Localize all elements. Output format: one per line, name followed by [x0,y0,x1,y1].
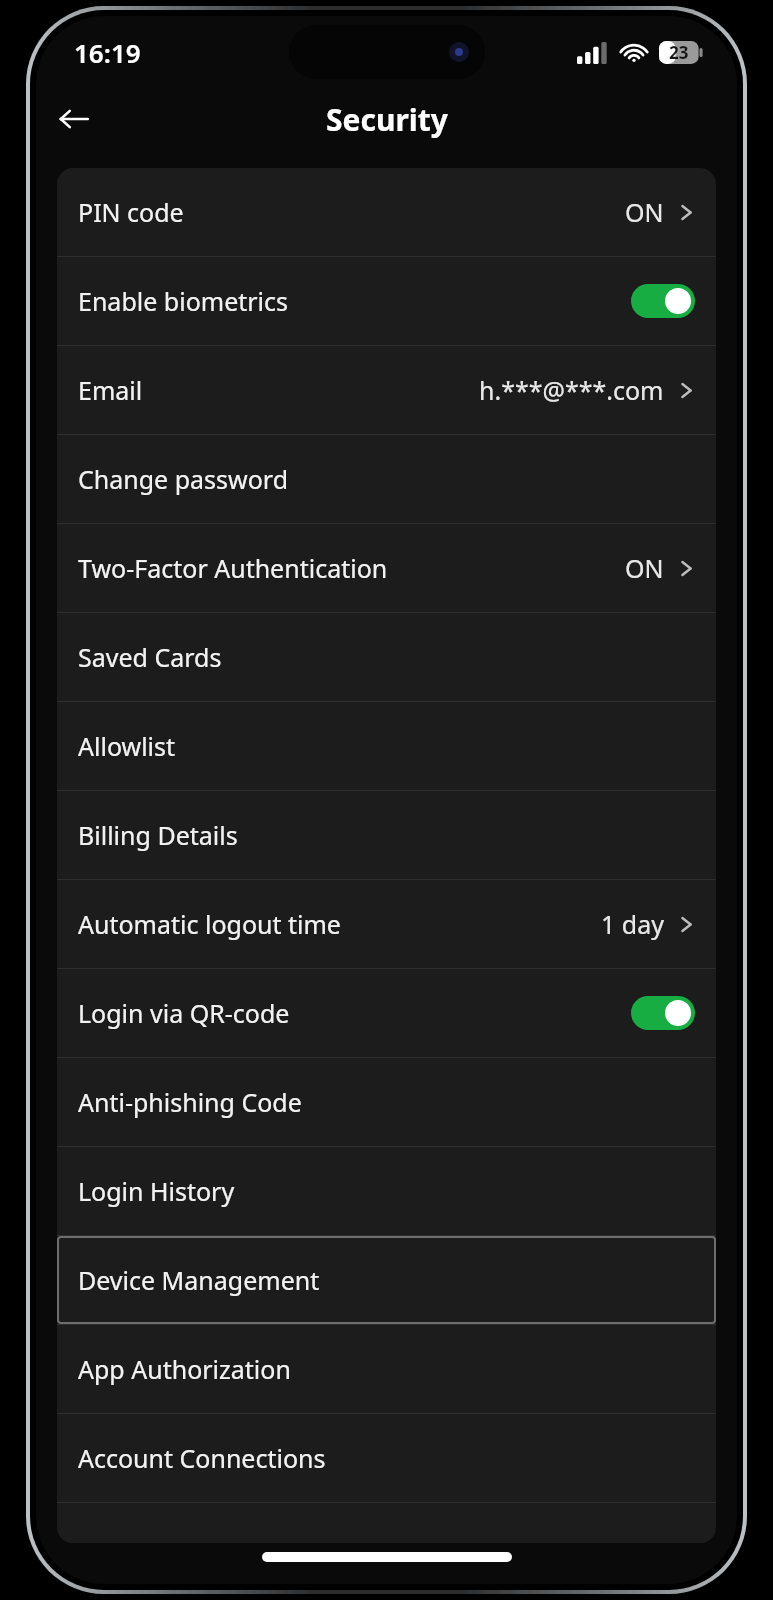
staticText: Email [78,373,143,407]
staticText: Automatic logout time [78,907,341,941]
button[interactable]: Enable biometrics [57,257,716,345]
button[interactable]: Login History [57,1147,716,1235]
staticText: Enable biometrics [78,284,289,318]
button[interactable]: Back [48,93,100,145]
staticText: 1 day [601,907,664,941]
staticText: Login History [78,1174,235,1208]
button[interactable]: Toggle Login via QR-code [631,996,695,1030]
staticText: 16:19 [74,35,141,70]
button[interactable]: App Authorization [57,1325,716,1413]
staticText: 23 [669,41,689,64]
staticText: Anti-phishing Code [78,1085,302,1119]
button[interactable]: Billing Details [57,791,716,879]
button[interactable]: Anti-phishing Code [57,1058,716,1146]
staticText: Saved Cards [78,640,222,674]
button[interactable]: Automatic logout time [57,880,716,968]
button[interactable]: PIN code [57,168,716,256]
button[interactable]: Allowlist [57,702,716,790]
button[interactable]: Email [57,346,716,434]
button[interactable]: Device Management [57,1236,716,1324]
button[interactable]: Toggle Enable biometrics [631,284,695,318]
button[interactable]: Change password [57,435,716,523]
staticText: App Authorization [78,1352,291,1386]
button[interactable]: Saved Cards [57,613,716,701]
staticText: ON [625,551,664,585]
staticText: Security [326,99,448,140]
button[interactable]: Account Connections [57,1414,716,1502]
staticText: Device Management [78,1263,320,1297]
staticText: Login via QR-code [78,996,290,1030]
button[interactable]: Two-Factor Authentication [57,524,716,612]
button[interactable]: Login via QR-code [57,969,716,1057]
staticText: Two-Factor Authentication [78,551,388,585]
staticText: h.***@***.com [479,373,664,407]
staticText: Change password [78,462,289,496]
staticText: Billing Details [78,818,238,852]
staticText: ON [625,195,664,229]
staticText: Account Connections [78,1441,326,1475]
staticText: Allowlist [78,729,176,763]
staticText: PIN code [78,195,184,229]
